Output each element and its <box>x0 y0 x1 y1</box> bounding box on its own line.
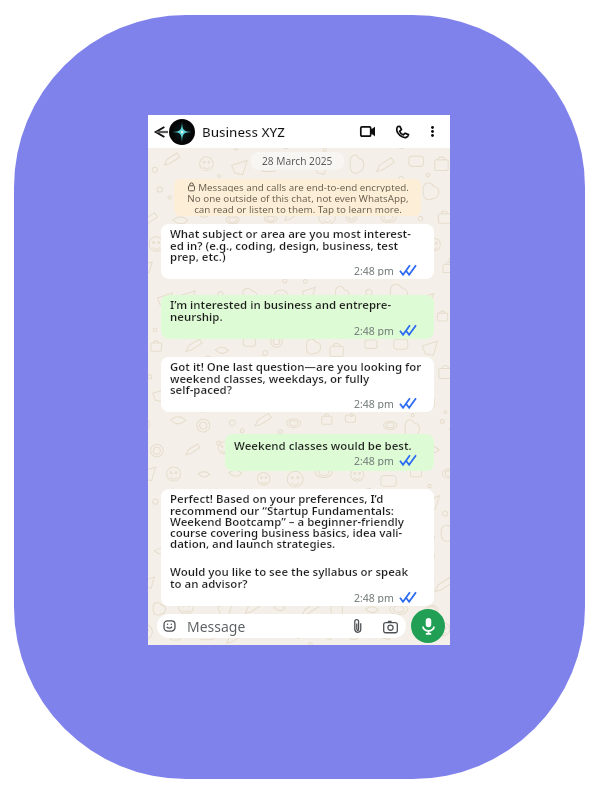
button[interactable]: Profile photo <box>169 119 195 145</box>
button[interactable]: Perfect! Based on your preferences, I’d … <box>161 489 434 606</box>
staticText: Messages and calls are end-to-end encryp… <box>198 181 409 192</box>
staticText: 2:48 pm <box>354 454 394 466</box>
staticText: Weekend classes would be best. <box>234 438 412 454</box>
button[interactable]: Back <box>151 122 171 141</box>
staticText: Business XYZ <box>202 123 285 141</box>
staticText: What subject or area are you most intere… <box>170 226 411 264</box>
staticText: 2:48 pm <box>354 397 394 409</box>
staticText: 2:48 pm <box>354 591 394 603</box>
staticText: Would you like to see the syllabus or sp… <box>170 564 409 591</box>
button[interactable]: Attach <box>348 617 366 635</box>
staticText: 2:48 pm <box>354 324 394 336</box>
staticText: No one outside of this chat, not even Wh… <box>187 192 409 216</box>
button[interactable]: Camera <box>382 618 398 634</box>
button[interactable]: Video call <box>353 121 381 142</box>
button[interactable]: What subject or area are you most intere… <box>161 224 434 279</box>
staticText: 28 March 2025 <box>262 154 333 168</box>
staticText: I’m interested in business and entrepre-… <box>170 297 392 324</box>
button[interactable]: Messages and calls are end-to-end encryp… <box>174 179 421 216</box>
button[interactable]: Message <box>157 614 406 638</box>
button[interactable]: 28 March 2025 <box>251 152 344 170</box>
button[interactable]: Weekend classes would be best. <box>225 434 434 471</box>
staticText: Got it! One last question—are you lookin… <box>170 359 422 397</box>
staticText: 2:48 pm <box>354 264 394 276</box>
button[interactable]: More options <box>423 121 442 142</box>
button[interactable]: Got it! One last question—are you lookin… <box>161 357 434 412</box>
staticText: Perfect! Based on your preferences, I’d … <box>170 491 404 551</box>
button[interactable]: I’m interested in business and entrepre-… <box>161 295 434 339</box>
staticText: Message <box>187 617 246 636</box>
button[interactable]: Voice call <box>389 121 415 142</box>
button[interactable]: Voice message <box>411 609 445 643</box>
